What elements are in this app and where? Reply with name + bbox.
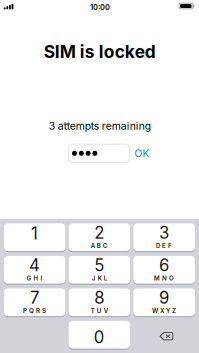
staticText: 5 — [94, 255, 104, 275]
staticText: 2 — [94, 223, 104, 243]
staticText: 1 — [31, 223, 38, 243]
staticText: 7 — [30, 288, 39, 308]
staticText: 3 attempts remaining — [49, 120, 151, 132]
button[interactable]: 7 — [4, 288, 65, 316]
button[interactable]: 0 — [68, 321, 130, 349]
staticText: J K L — [92, 275, 107, 282]
staticText: W X Y Z — [152, 307, 176, 315]
button[interactable]: 5 — [68, 256, 130, 284]
button[interactable]: 1 — [4, 223, 65, 251]
staticText: 4 — [29, 255, 40, 275]
staticText: G H I — [27, 275, 43, 282]
staticText: D E F — [156, 242, 172, 250]
staticText: 8 — [94, 288, 104, 308]
staticText: P Q R S — [23, 307, 46, 315]
staticText: 6 — [159, 255, 169, 275]
button[interactable]: 2 — [68, 223, 130, 251]
staticText: OK — [135, 147, 150, 160]
button[interactable]: OK — [135, 147, 150, 160]
button[interactable]: Delete — [133, 321, 195, 349]
button[interactable]: 3 — [133, 223, 195, 251]
staticText: 0 — [94, 327, 105, 347]
button[interactable]: 8 — [68, 288, 130, 316]
staticText: 10:00 — [90, 3, 110, 12]
button[interactable]: 6 — [133, 256, 195, 284]
staticText: 9 — [159, 288, 169, 308]
button[interactable]: 4 — [4, 256, 65, 284]
staticText: A B C — [91, 242, 108, 250]
staticText: T U V — [91, 307, 108, 315]
button[interactable]: 9 — [133, 288, 195, 316]
staticText: 3 — [159, 223, 169, 243]
staticText: SIM is locked — [44, 41, 156, 62]
staticText: M N O — [154, 275, 174, 282]
